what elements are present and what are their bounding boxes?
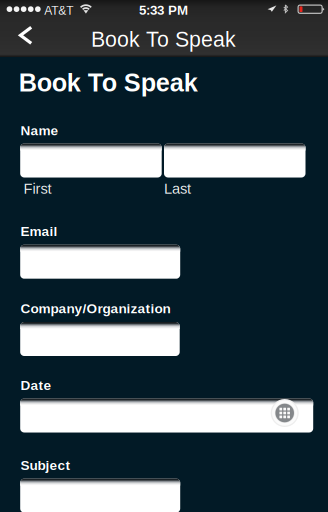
button[interactable]: Text field bbox=[20, 143, 162, 177]
button[interactable]: Text field bbox=[164, 143, 305, 177]
staticText: Name bbox=[21, 123, 59, 138]
staticText: Subject bbox=[21, 458, 71, 473]
staticText: First bbox=[23, 180, 51, 197]
staticText: Book To Speak bbox=[19, 69, 198, 97]
staticText: 5:33 PM bbox=[139, 3, 188, 18]
button[interactable]: Back bbox=[0, 18, 52, 57]
staticText: Date bbox=[21, 378, 52, 393]
button[interactable]: Pick date bbox=[271, 399, 299, 427]
staticText: Last bbox=[164, 180, 191, 197]
staticText: Company/Organization bbox=[21, 301, 171, 316]
button[interactable]: Text field bbox=[20, 398, 313, 432]
button[interactable]: Text field bbox=[20, 322, 180, 356]
button[interactable]: Text field bbox=[20, 245, 180, 279]
staticText: Email bbox=[21, 224, 58, 239]
staticText: Book To Speak bbox=[91, 27, 236, 51]
staticText: AT&T bbox=[44, 4, 73, 17]
button[interactable]: Text field bbox=[20, 479, 180, 512]
